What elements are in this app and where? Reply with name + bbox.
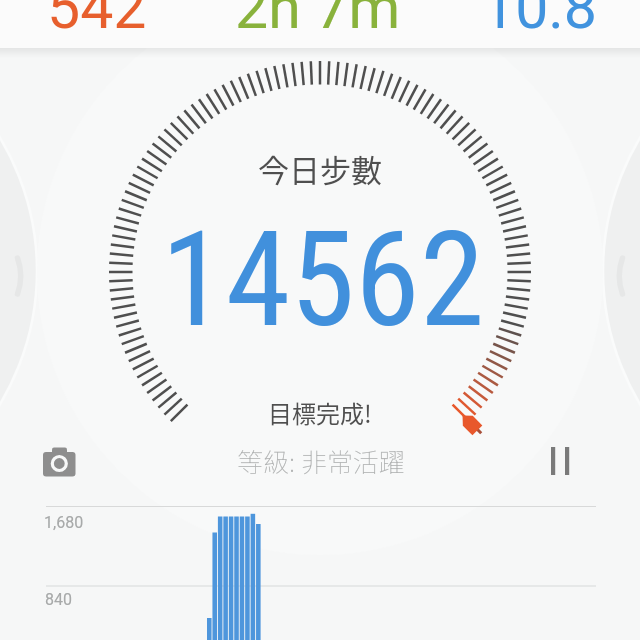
staticText: 2h 7m xyxy=(235,0,401,42)
button[interactable] xyxy=(4,252,36,300)
staticText: 840 xyxy=(45,590,72,609)
staticText: 等級: 非常活躍 xyxy=(237,442,405,480)
staticText: 542 xyxy=(47,0,147,42)
button[interactable] xyxy=(604,252,636,300)
staticText: 1,680 xyxy=(44,513,84,532)
staticText: 10.8 xyxy=(482,0,598,42)
button[interactable] xyxy=(38,442,80,482)
button[interactable] xyxy=(0,0,640,48)
staticText: 今日步數 xyxy=(258,146,382,191)
button[interactable] xyxy=(541,437,585,481)
staticText: 目標完成! xyxy=(268,395,372,430)
staticText: 14562 xyxy=(161,203,485,357)
